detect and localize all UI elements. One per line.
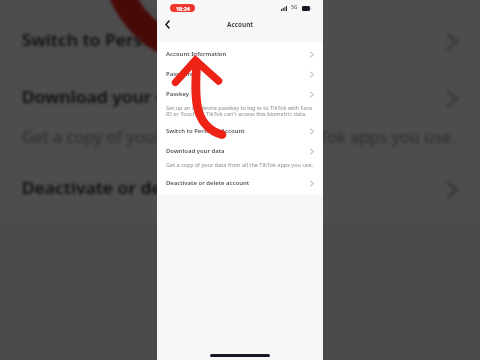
staticText: 18:24 xyxy=(176,5,190,12)
button[interactable]: Deactivate or delete account xyxy=(0,160,480,217)
staticText: Download your data xyxy=(22,86,446,109)
staticText: Switch to Personal Account xyxy=(166,127,310,135)
staticText: Password xyxy=(166,70,310,78)
button[interactable]: Download your data xyxy=(0,69,480,160)
staticText: Switch to Personal Account xyxy=(22,29,446,52)
staticText: Deactivate or delete account xyxy=(22,177,446,200)
staticText: Download your data xyxy=(166,147,310,155)
staticText: Account xyxy=(227,20,254,29)
button[interactable]: Password xyxy=(157,64,323,84)
button[interactable]: Switch to Personal Account xyxy=(0,12,480,69)
staticText: Set up an on-device passkey to log in to… xyxy=(166,104,314,117)
staticText: 5G xyxy=(291,4,298,11)
button[interactable]: Passkey xyxy=(0,0,480,12)
staticText: Deactivate or delete account xyxy=(166,179,310,187)
button[interactable]: Back xyxy=(160,17,174,31)
staticText: Passkey xyxy=(166,90,310,98)
staticText: Account Information xyxy=(166,50,310,58)
button[interactable]: Switch to Personal Account xyxy=(157,121,323,141)
button[interactable]: Download your data xyxy=(157,141,323,173)
button[interactable]: Account Information xyxy=(157,44,323,64)
button[interactable]: Deactivate or delete account xyxy=(157,173,323,193)
staticText: Get a copy of your data from all the Tik… xyxy=(166,161,314,169)
button[interactable]: Passkey xyxy=(157,84,323,121)
staticText: Get a copy of your data from all the Tik… xyxy=(22,126,458,149)
